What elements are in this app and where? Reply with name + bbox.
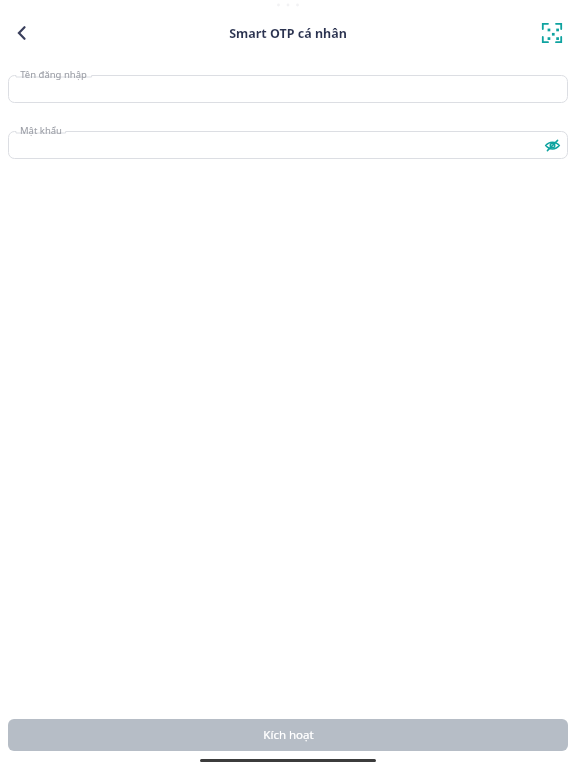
staticText: Kích hoạt: [263, 727, 314, 743]
staticText: Tên đăng nhập: [20, 68, 87, 81]
button[interactable]: Toggle password visibility: [541, 134, 563, 156]
button[interactable]: Toggle password visibility: [8, 131, 568, 159]
staticText: Smart OTP cá nhân: [229, 25, 347, 42]
button[interactable]: Kích hoạt: [8, 719, 568, 751]
button[interactable]: Back: [2, 13, 42, 53]
button[interactable]: Scan QR code: [532, 13, 572, 53]
button[interactable]: [8, 75, 568, 103]
staticText: Mật khẩu: [20, 124, 62, 137]
